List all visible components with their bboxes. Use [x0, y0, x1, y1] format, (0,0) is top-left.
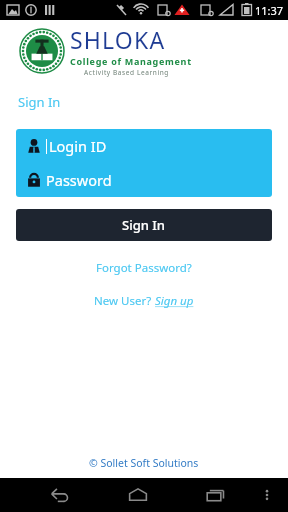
staticText: College of Management: [70, 55, 192, 67]
button[interactable]: Login ID: [16, 129, 272, 163]
staticText: Activity Based Learning: [84, 68, 169, 77]
staticText: © Sollet Soft Solutions: [89, 456, 199, 470]
staticText: Password: [46, 170, 112, 190]
staticText: New User?: [94, 293, 155, 309]
button[interactable]: Forgot Password?: [0, 257, 288, 279]
button[interactable]: Recent apps: [194, 478, 238, 512]
button[interactable]: Sign up: [155, 293, 194, 309]
staticText: SHLOKA: [70, 24, 166, 55]
staticText: Sign In: [18, 93, 61, 111]
staticText: 11:37: [255, 3, 284, 18]
staticText: Sign In: [122, 216, 166, 234]
button[interactable]: Password: [16, 163, 272, 197]
button[interactable]: Sign In: [16, 209, 272, 241]
staticText: Sign up: [155, 293, 194, 309]
button[interactable]: Home: [116, 478, 160, 512]
staticText: Login ID: [49, 136, 107, 156]
staticText: Forgot Password?: [96, 260, 192, 276]
button[interactable]: Back: [38, 478, 82, 512]
button[interactable]: More options: [252, 480, 282, 510]
